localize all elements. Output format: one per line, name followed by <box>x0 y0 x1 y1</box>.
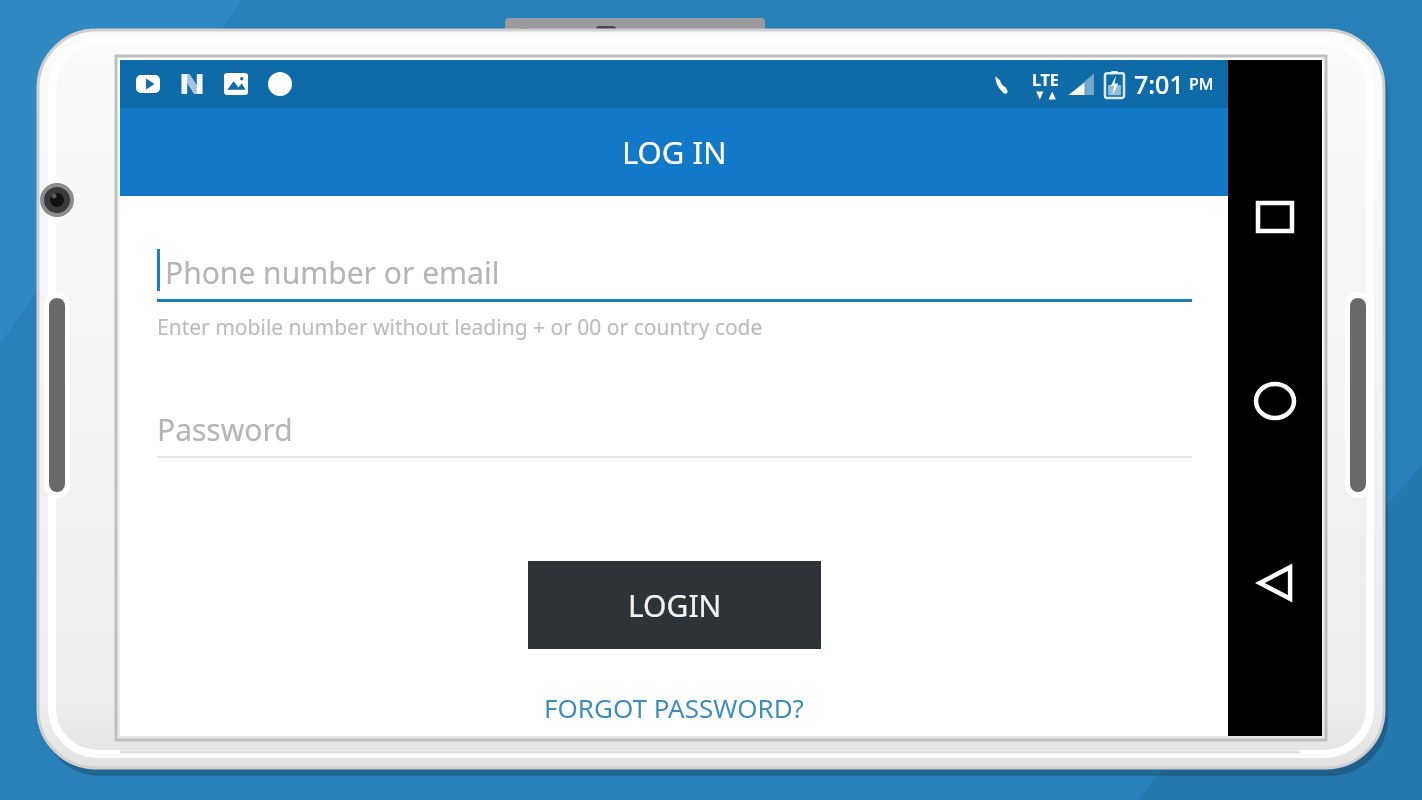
staticText: Password <box>157 409 293 450</box>
button[interactable]: Recent apps <box>1228 170 1322 264</box>
staticText: FORGOT PASSWORD? <box>544 690 804 725</box>
staticText: LOGIN <box>628 585 722 626</box>
staticText: 7:01 <box>1134 67 1184 101</box>
staticText: LTE <box>1032 69 1059 91</box>
button[interactable]: Home <box>1228 354 1322 448</box>
staticText: Phone number or email <box>165 252 500 293</box>
button[interactable]: Back <box>1228 536 1322 630</box>
staticText: LOG IN <box>622 131 727 173</box>
staticText: PM <box>1189 73 1214 95</box>
button[interactable]: FORGOT PASSWORD? <box>120 681 1228 733</box>
button[interactable]: LOGIN <box>528 561 821 649</box>
staticText: Enter mobile number without leading + or… <box>157 313 763 342</box>
